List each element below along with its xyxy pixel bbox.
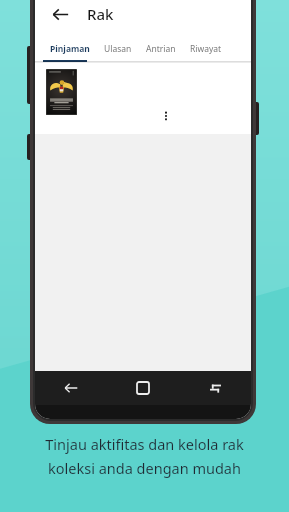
staticText: Antrian <box>146 43 176 55</box>
button[interactable]: Ulasan <box>97 36 139 62</box>
button[interactable]: More options <box>87 69 245 127</box>
button[interactable]: Pancasila dalam Sudut Pandang Hukum <box>35 62 251 134</box>
button[interactable]: Recent apps <box>179 371 251 405</box>
staticText: Tinjau aktifitas dan kelola rak <box>45 434 244 454</box>
staticText: Rak <box>87 4 114 24</box>
staticText: Ulasan <box>104 43 132 55</box>
button[interactable]: Back <box>43 0 77 31</box>
button[interactable]: Back <box>35 371 107 405</box>
staticText: koleksi anda dengan mudah <box>48 458 241 478</box>
button[interactable]: Antrian <box>139 36 183 62</box>
button[interactable]: Riwayat <box>183 36 229 62</box>
staticText: Pinjaman <box>50 43 90 55</box>
staticText: Riwayat <box>190 43 222 55</box>
button[interactable]: Pinjaman <box>43 36 97 62</box>
button[interactable]: Home <box>107 371 179 405</box>
